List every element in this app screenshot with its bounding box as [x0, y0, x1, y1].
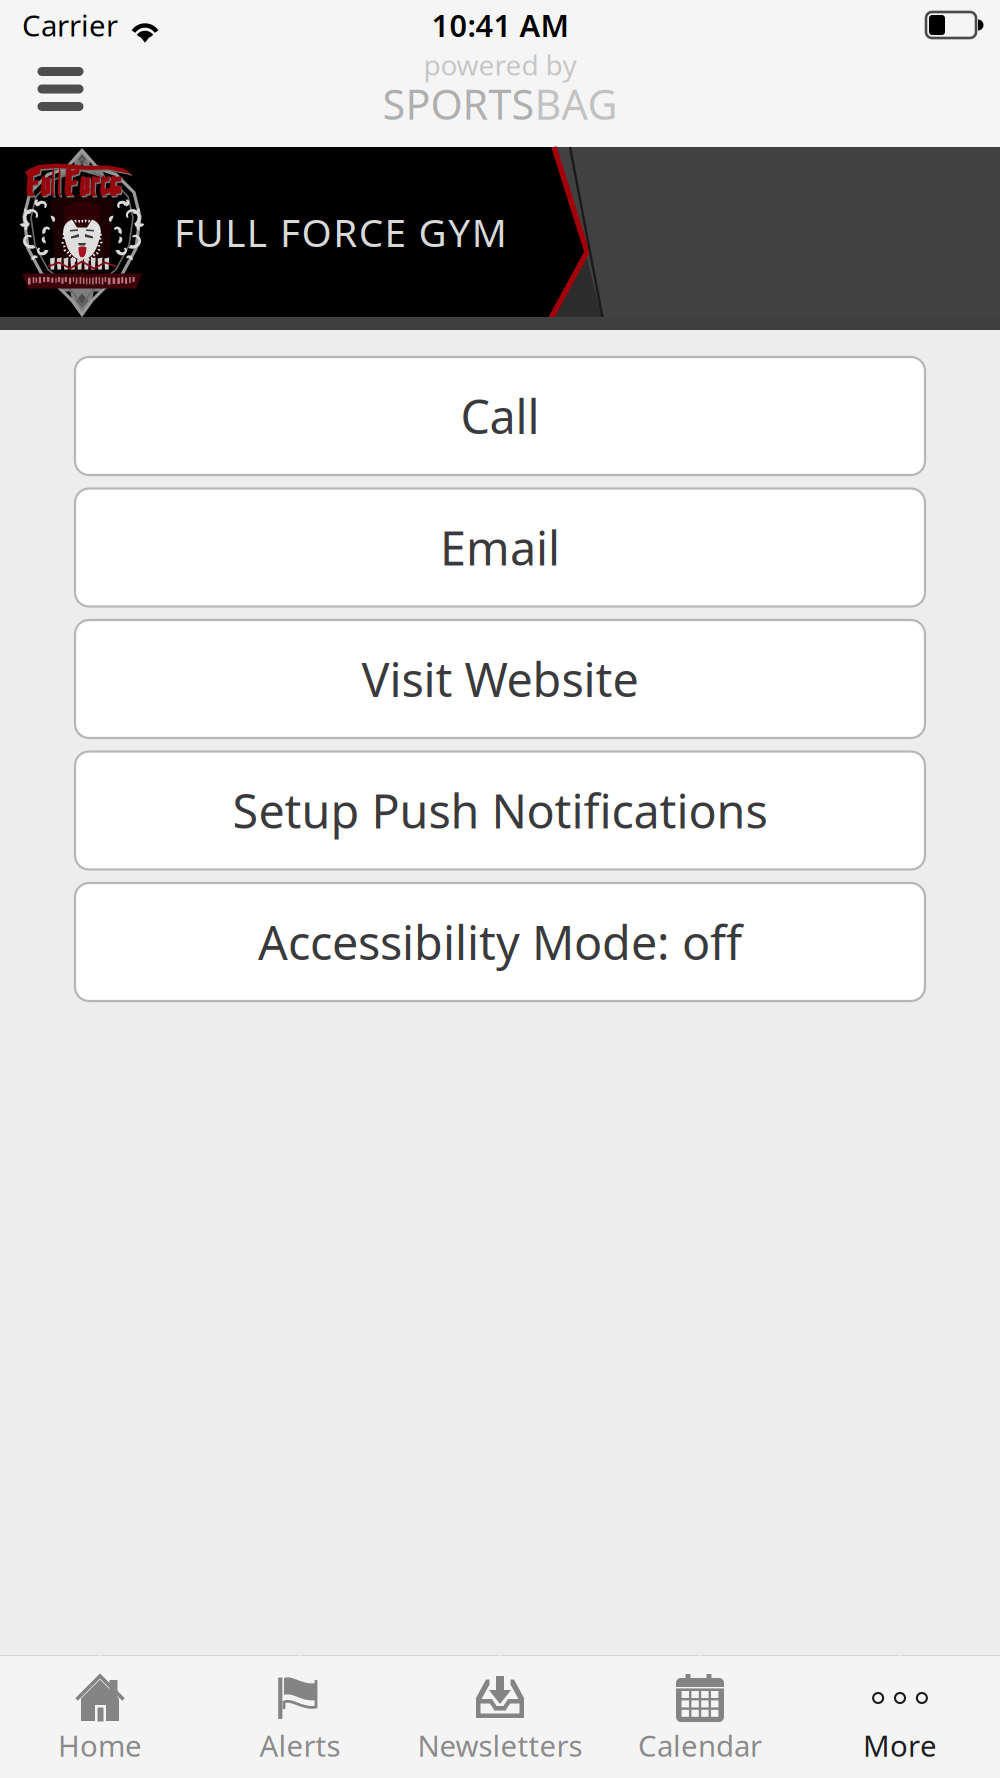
button[interactable]: Menu	[0, 50, 121, 147]
button[interactable]: Email	[75, 488, 925, 606]
staticText: Call	[460, 385, 539, 447]
staticText: SPORTS	[382, 76, 534, 131]
staticText: Carrier	[22, 5, 118, 44]
staticText: 10:41 AM	[431, 5, 568, 45]
staticText: BAG	[534, 76, 617, 131]
button[interactable]: Visit Website	[75, 620, 925, 738]
button[interactable]: Setup Push Notifications	[75, 751, 925, 869]
staticText: Alerts	[259, 1726, 340, 1765]
button[interactable]: Newsletters	[400, 1655, 600, 1778]
button[interactable]: Home	[0, 1655, 200, 1778]
staticText: FULL FORCE GYM	[174, 206, 507, 258]
button[interactable]: More	[800, 1655, 1000, 1778]
button[interactable]: Accessibility Mode: off	[75, 883, 925, 1001]
staticText: More	[863, 1726, 937, 1765]
button[interactable]: Calendar	[600, 1655, 800, 1778]
button[interactable]: Call	[75, 357, 925, 475]
button[interactable]: Alerts	[200, 1655, 400, 1778]
staticText: Home	[58, 1726, 142, 1765]
staticText: Visit Website	[361, 648, 638, 710]
staticText: Setup Push Notifications	[232, 779, 767, 841]
staticText: powered by	[423, 46, 576, 83]
staticText: Email	[440, 516, 560, 578]
staticText: Calendar	[638, 1726, 762, 1765]
staticText: Newsletters	[417, 1726, 582, 1765]
staticText: Accessibility Mode: off	[258, 911, 742, 973]
